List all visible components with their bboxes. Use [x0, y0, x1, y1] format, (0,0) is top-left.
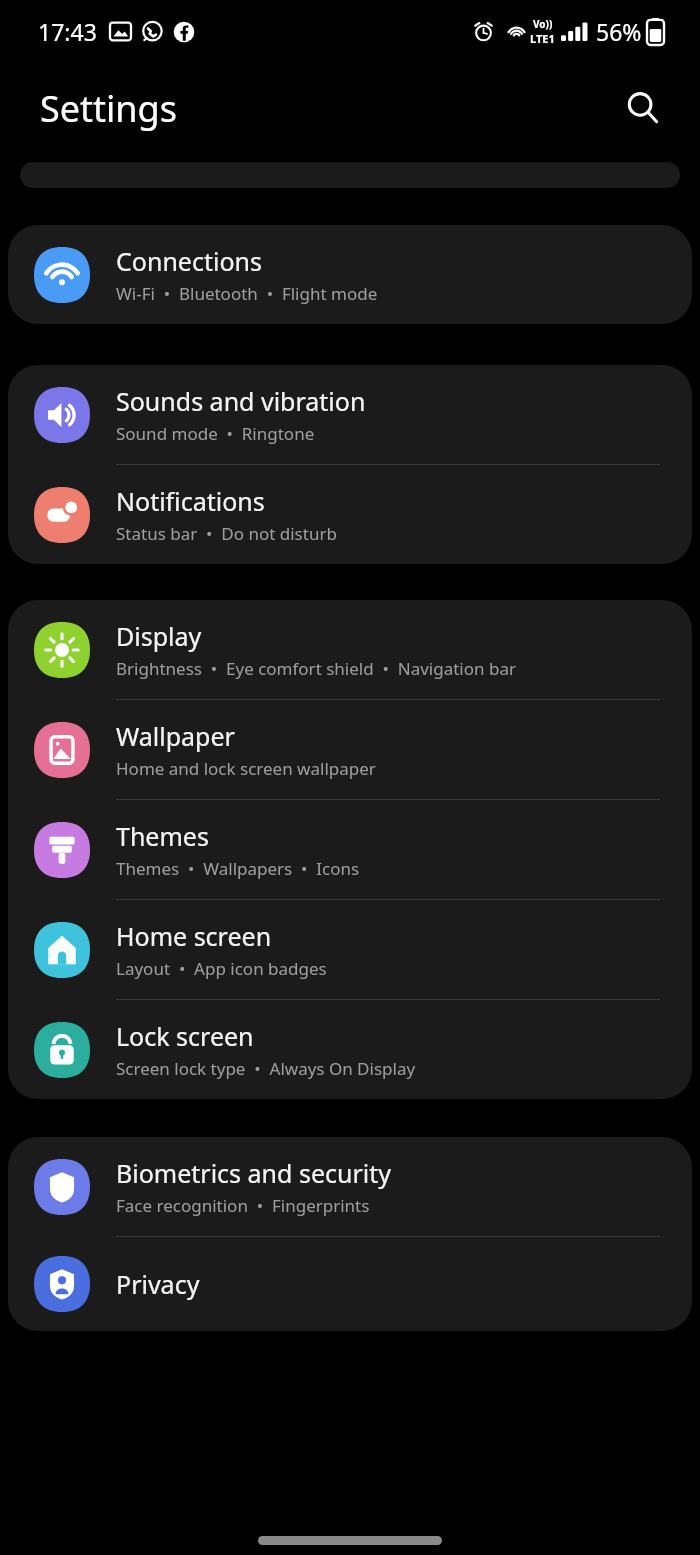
staticText: Home and lock screen wallpaper [116, 757, 376, 780]
staticText: Sound mode • Ringtone [116, 422, 315, 445]
button[interactable]: Wallpaper [8, 700, 692, 799]
staticText: Face recognition • Fingerprints [116, 1194, 370, 1217]
staticText: Privacy [116, 1267, 200, 1301]
staticText: 17:43 [38, 16, 97, 47]
staticText: 56% [596, 16, 642, 47]
staticText: Status bar • Do not disturb [116, 522, 337, 545]
button[interactable]: Connections [8, 225, 692, 324]
staticText: Home screen [116, 919, 272, 953]
button[interactable]: Biometrics and security [8, 1137, 692, 1236]
staticText: Biometrics and security [116, 1156, 392, 1190]
button[interactable]: Display [8, 600, 692, 699]
staticText: Lock screen [116, 1019, 254, 1053]
staticText: Themes [116, 819, 209, 853]
staticText: Wi-Fi • Bluetooth • Flight mode [116, 282, 378, 305]
staticText: Sounds and vibration [116, 384, 366, 418]
button[interactable]: Search [614, 79, 672, 137]
staticText: Screen lock type • Always On Display [116, 1057, 416, 1080]
button[interactable]: Home screen [8, 900, 692, 999]
staticText: Vo)) [533, 17, 553, 31]
button[interactable]: Themes [8, 800, 692, 899]
staticText: LTE1 [530, 31, 555, 46]
button[interactable]: Privacy [8, 1237, 692, 1331]
button[interactable]: Lock screen [8, 1000, 692, 1099]
staticText: Wallpaper [116, 719, 235, 753]
staticText: Display [116, 619, 202, 653]
staticText: Settings [40, 84, 177, 133]
staticText: Notifications [116, 484, 265, 518]
staticText: Connections [116, 244, 262, 278]
staticText: Themes • Wallpapers • Icons [116, 857, 360, 880]
button[interactable]: Notifications [8, 465, 692, 564]
staticText: Brightness • Eye comfort shield • Naviga… [116, 657, 516, 680]
staticText: Layout • App icon badges [116, 957, 327, 980]
button[interactable]: Sounds and vibration [8, 365, 692, 464]
